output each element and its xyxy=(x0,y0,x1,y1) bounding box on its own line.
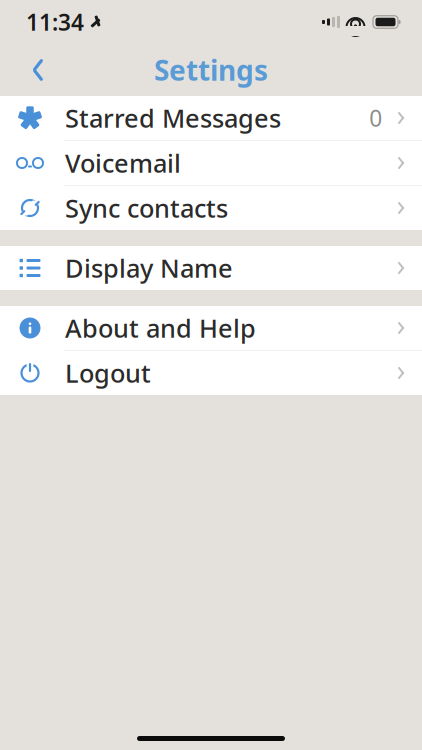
button[interactable]: Starred Messages xyxy=(0,96,422,140)
staticText: Settings xyxy=(154,51,268,89)
staticText: Starred Messages xyxy=(65,101,281,135)
button[interactable]: Logout xyxy=(0,351,422,395)
button[interactable]: Sync contacts xyxy=(0,186,422,230)
button[interactable]: Voicemail xyxy=(0,141,422,185)
staticText: Display Name xyxy=(65,251,233,285)
staticText: Sync contacts xyxy=(65,191,228,225)
button[interactable]: Back xyxy=(16,48,60,92)
staticText: 11:34 xyxy=(26,7,84,37)
button[interactable]: Display Name xyxy=(0,246,422,290)
staticText: About and Help xyxy=(65,311,256,345)
staticText: Logout xyxy=(65,356,151,390)
button[interactable]: About and Help xyxy=(0,306,422,350)
staticText: Voicemail xyxy=(65,146,181,180)
staticText: 0 xyxy=(369,103,382,133)
